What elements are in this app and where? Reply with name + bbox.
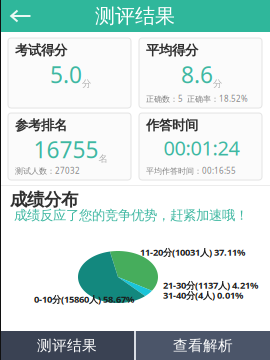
button[interactable]: Back	[0, 0, 32, 31]
staticText: 00:01:24	[163, 134, 239, 161]
staticText: 0-10分(15860人) 58.67%	[34, 293, 134, 305]
staticText: 21-30分(1137人) 4.21%	[163, 279, 258, 291]
staticText: 参考排名	[15, 117, 67, 133]
staticText: 成绩分布	[10, 189, 78, 210]
staticText: 成绩反应了您的竞争优势，赶紧加速哦！	[14, 207, 248, 223]
staticText: 分	[82, 78, 91, 89]
staticText: 考试得分	[15, 42, 67, 58]
staticText: 测试人数：27032	[15, 165, 80, 176]
staticText: 8.6	[181, 59, 213, 89]
staticText: 16755	[33, 134, 98, 164]
staticText: 平均作答时间：00:16:55	[146, 165, 236, 176]
staticText: 名	[98, 153, 107, 164]
staticText: 作答时间	[146, 117, 198, 133]
staticText: 正确数：5 正确率：18.52%	[146, 93, 248, 104]
staticText: 5.0	[50, 59, 82, 89]
staticText: 查看解析	[173, 336, 233, 354]
staticText: 测评结果	[37, 336, 97, 354]
staticText: 11-20分(10031人) 37.11%	[140, 246, 245, 258]
staticText: 测评结果	[95, 4, 175, 28]
staticText: 分	[213, 78, 222, 89]
button[interactable]: 测评结果	[0, 331, 134, 360]
staticText: 平均得分	[146, 42, 198, 58]
button[interactable]: 查看解析	[136, 331, 270, 360]
staticText: 31-40分(4人) 0.01%	[163, 289, 243, 301]
